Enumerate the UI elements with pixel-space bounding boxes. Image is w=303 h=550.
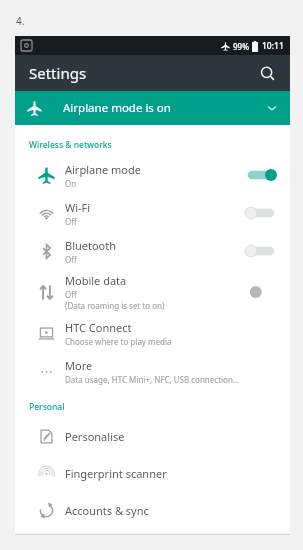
button[interactable]: Accounts & sync bbox=[15, 492, 290, 529]
staticText: 4. bbox=[16, 14, 25, 28]
button[interactable]: Toggle bbox=[244, 165, 278, 185]
button[interactable]: Fingerprint scanner bbox=[15, 455, 290, 492]
button[interactable]: Mobile data bbox=[15, 270, 290, 314]
staticText: Airplane mode is on bbox=[63, 100, 171, 116]
staticText: Off bbox=[65, 254, 77, 265]
staticText: (Data roaming is set to on) bbox=[65, 300, 165, 311]
staticText: Off bbox=[65, 216, 77, 227]
button[interactable]: HTC Connect bbox=[15, 314, 290, 352]
staticText: On bbox=[65, 178, 77, 189]
button[interactable]: Airplane mode is on bbox=[15, 91, 290, 125]
staticText: 99% bbox=[233, 41, 249, 52]
button[interactable]: Airplane mode bbox=[15, 156, 290, 194]
staticText: 10:11 bbox=[262, 40, 284, 52]
staticText: Off bbox=[65, 289, 77, 300]
button[interactable]: Toggle bbox=[244, 282, 278, 302]
staticText: Choose where to play media bbox=[65, 336, 172, 347]
button[interactable]: Wi-Fi bbox=[15, 194, 290, 232]
button[interactable]: Personalise bbox=[15, 418, 290, 455]
button[interactable]: Search bbox=[252, 58, 282, 88]
button[interactable]: Bluetooth bbox=[15, 232, 290, 270]
staticText: Wi-Fi bbox=[65, 200, 91, 215]
staticText: HTC Connect bbox=[65, 320, 132, 335]
staticText: Fingerprint scanner bbox=[65, 466, 167, 481]
staticText: Wireless & networks bbox=[29, 139, 112, 151]
staticText: Personal bbox=[29, 401, 65, 413]
staticText: Mobile data bbox=[65, 273, 127, 288]
staticText: Data usage, HTC Mini+, NFC, USB connecti… bbox=[65, 374, 240, 385]
staticText: Airplane mode bbox=[65, 162, 141, 177]
button[interactable]: Toggle bbox=[244, 241, 278, 261]
staticText: Settings bbox=[29, 63, 87, 83]
button[interactable]: Toggle bbox=[244, 203, 278, 223]
button[interactable]: More bbox=[15, 352, 290, 390]
staticText: Bluetooth bbox=[65, 238, 117, 253]
staticText: Accounts & sync bbox=[65, 503, 149, 518]
staticText: More bbox=[65, 358, 93, 373]
staticText: Personalise bbox=[65, 429, 125, 444]
